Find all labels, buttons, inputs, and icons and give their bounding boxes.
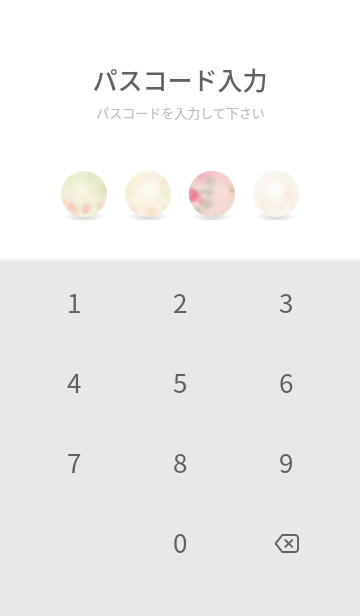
button[interactable]: 1 — [21, 262, 127, 342]
button[interactable]: 9 — [233, 422, 339, 502]
staticText: 3 — [279, 283, 294, 321]
staticText: 0 — [173, 523, 188, 561]
button[interactable]: 6 — [233, 342, 339, 422]
staticText: 8 — [173, 443, 188, 481]
button[interactable]: 0 — [127, 502, 233, 582]
button[interactable]: 4 — [21, 342, 127, 422]
button[interactable]: 3 — [233, 262, 339, 342]
staticText: パスコード入力 — [92, 61, 268, 97]
staticText: 1 — [67, 283, 82, 321]
staticText: 4 — [67, 363, 82, 401]
staticText: 9 — [279, 443, 294, 481]
staticText: 6 — [279, 363, 294, 401]
staticText: 5 — [173, 363, 188, 401]
staticText: 2 — [173, 283, 188, 321]
other: Delete — [274, 533, 299, 552]
button[interactable]: 8 — [127, 422, 233, 502]
button[interactable]: Delete — [233, 502, 339, 582]
staticText: パスコードを入力して下さい — [96, 103, 265, 122]
staticText: 7 — [67, 443, 82, 481]
button[interactable]: 7 — [21, 422, 127, 502]
button[interactable]: 5 — [127, 342, 233, 422]
button[interactable]: 2 — [127, 262, 233, 342]
